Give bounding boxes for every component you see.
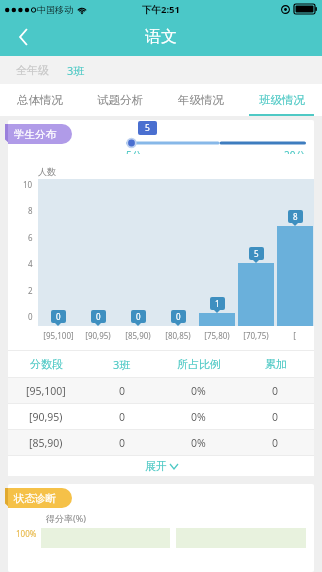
button[interactable]: 全年级 (0, 56, 59, 84)
staticText: 2 (28, 285, 33, 296)
staticText: [90,95) (85, 330, 111, 341)
staticText: 6 (28, 232, 33, 243)
staticText: [90,95) (29, 410, 63, 424)
staticText: 年级情况 (178, 93, 224, 107)
button[interactable]: 年级情况 (160, 84, 241, 116)
staticText: 学生分布 (14, 128, 56, 141)
staticText: 1 (215, 298, 220, 309)
staticText: 试题分析 (97, 93, 143, 107)
staticText: [95,100] (43, 330, 74, 341)
staticText: 状态诊断 (14, 492, 56, 505)
staticText: 中国移动 (37, 4, 73, 15)
staticText: 全年级 (16, 63, 49, 77)
staticText: 3班 (113, 357, 131, 372)
staticText: 5分 (126, 148, 142, 154)
staticText: 0% (191, 384, 206, 398)
staticText: 0 (56, 311, 61, 322)
staticText: 得分率(%) (46, 512, 86, 524)
staticText: 展开 (145, 459, 167, 473)
staticText: 100% (16, 528, 37, 539)
button[interactable]: [95,100] (8, 378, 314, 403)
staticText: 0% (191, 436, 206, 450)
staticText: 3班 (67, 63, 85, 78)
button[interactable]: Back (0, 18, 46, 56)
staticText: 0 (119, 410, 126, 424)
staticText: 0 (96, 311, 101, 322)
staticText: [85,90) (29, 436, 63, 450)
staticText: [ (293, 330, 296, 341)
staticText: [75,80) (204, 330, 230, 341)
staticText: 0% (191, 410, 206, 424)
button[interactable]: 班级情况 (241, 84, 322, 116)
staticText: 10 (23, 179, 33, 190)
staticText: 0 (176, 311, 181, 322)
staticText: 分数段 (30, 357, 63, 371)
staticText: 0 (272, 410, 279, 424)
staticText: 20分 (284, 148, 306, 154)
staticText: 0 (272, 384, 279, 398)
button[interactable]: 3班 (59, 56, 93, 84)
staticText: 人数 (38, 166, 56, 177)
staticText: 5 (254, 248, 259, 259)
staticText: 0 (28, 311, 33, 322)
staticText: 所占比例 (177, 357, 221, 371)
staticText: [70,75) (243, 330, 269, 341)
staticText: 5 (145, 122, 150, 134)
staticText: 语文 (145, 27, 177, 47)
staticText: 0 (119, 436, 126, 450)
button[interactable]: 展开 (8, 456, 314, 476)
button[interactable]: [90,95) (8, 404, 314, 429)
staticText: 0 (272, 436, 279, 450)
staticText: 下午2:51 (142, 3, 180, 16)
staticText: 8 (293, 211, 298, 222)
staticText: 累加 (265, 357, 287, 371)
staticText: 0 (119, 384, 126, 398)
staticText: 总体情况 (17, 93, 63, 107)
button[interactable]: Score range slider (126, 138, 306, 148)
staticText: 8 (28, 205, 33, 216)
staticText: [80,85) (165, 330, 191, 341)
staticText: [85,90) (125, 330, 151, 341)
button[interactable]: [85,90) (8, 430, 314, 455)
staticText: [95,100] (26, 384, 66, 398)
staticText: 4 (28, 258, 33, 269)
staticText: 班级情况 (259, 93, 305, 107)
staticText: 0 (136, 311, 141, 322)
button[interactable]: 试题分析 (80, 84, 160, 116)
button[interactable]: 总体情况 (0, 84, 80, 116)
